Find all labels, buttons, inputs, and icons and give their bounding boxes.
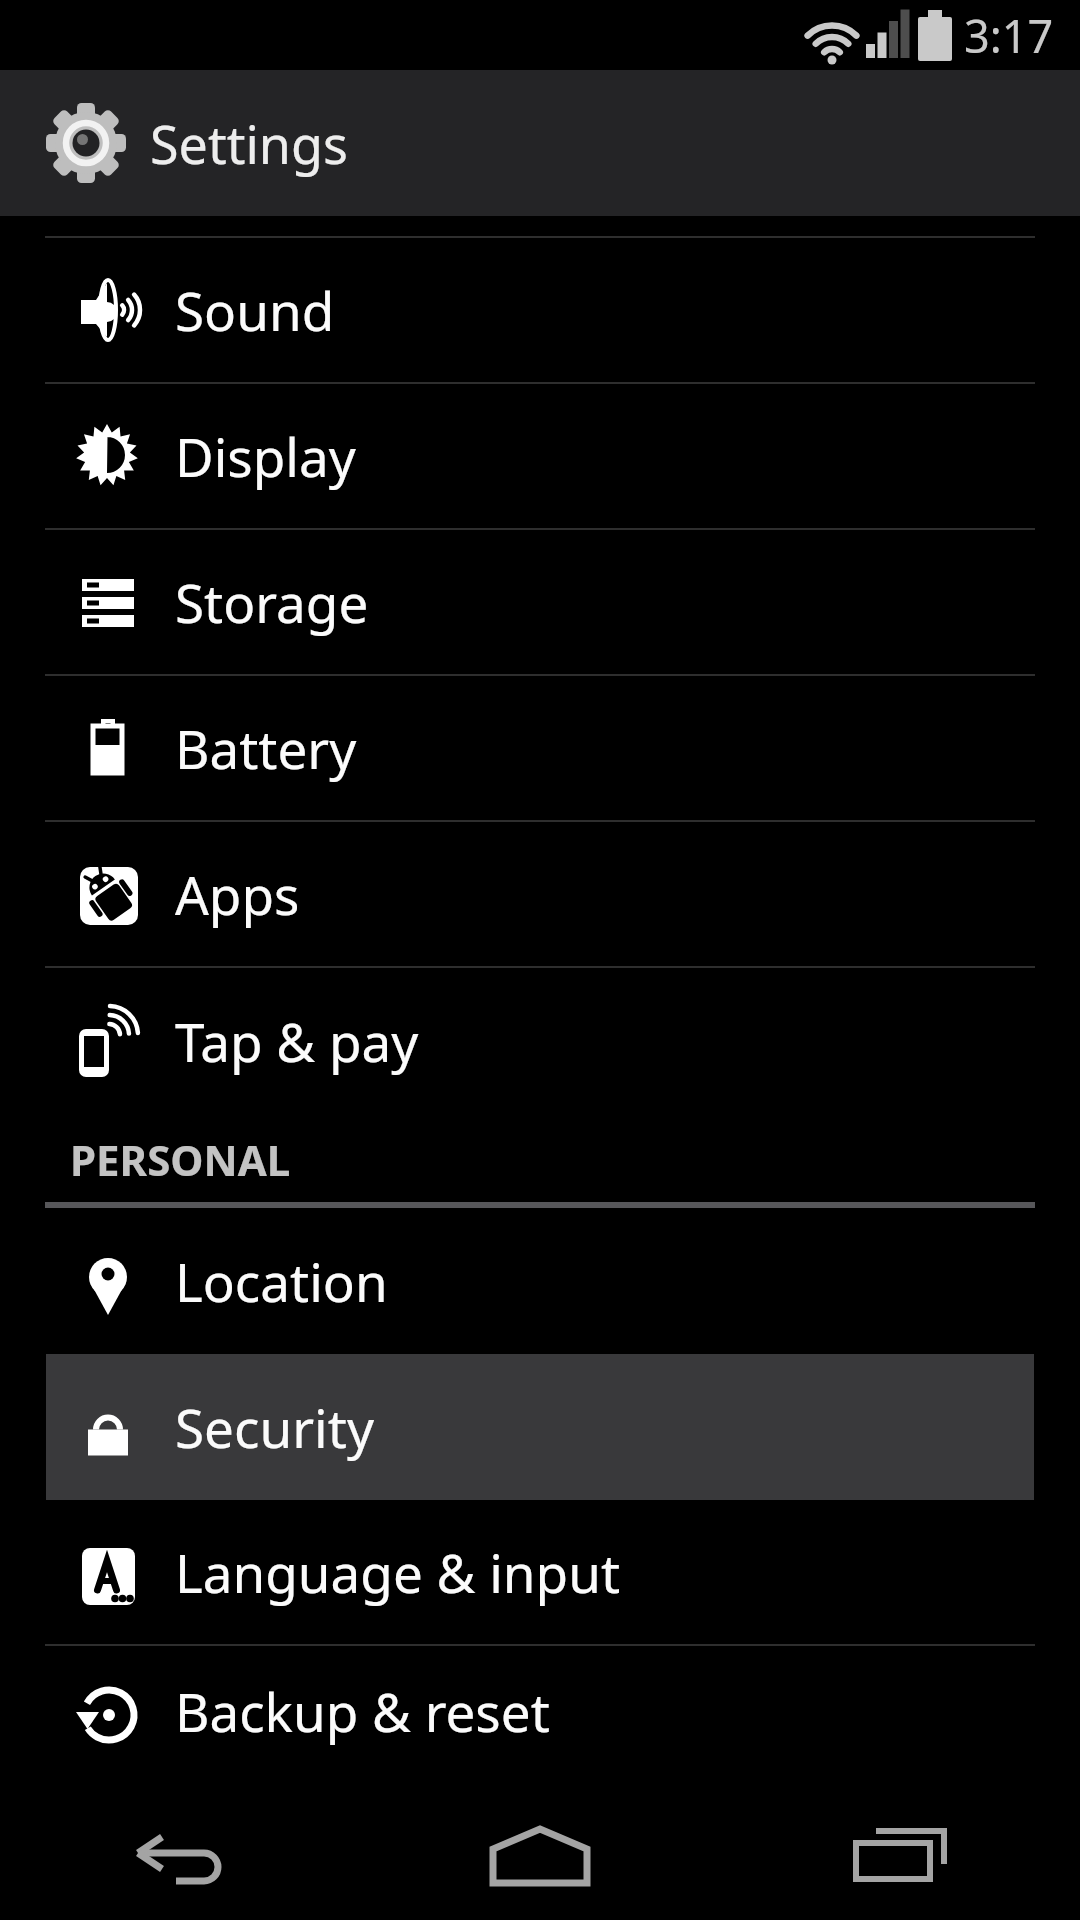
button[interactable]: Display xyxy=(0,384,1080,528)
button[interactable]: Apps xyxy=(0,822,1080,966)
staticText: Storage xyxy=(175,566,369,638)
button[interactable] xyxy=(720,1776,1080,1920)
button[interactable]: Backup & reset xyxy=(0,1646,1080,1776)
button[interactable]: Sound xyxy=(0,238,1080,382)
button[interactable]: Storage xyxy=(0,530,1080,674)
staticText: Tap & pay xyxy=(175,1005,419,1077)
staticText: Language & input xyxy=(175,1536,621,1608)
button[interactable]: Language & input xyxy=(0,1500,1080,1644)
staticText: Backup & reset xyxy=(175,1675,550,1747)
button[interactable] xyxy=(360,1776,720,1920)
staticText: Display xyxy=(175,420,356,492)
staticText: Apps xyxy=(175,858,300,930)
staticText: Settings xyxy=(150,108,348,179)
button[interactable]: Battery xyxy=(0,676,1080,820)
button[interactable] xyxy=(0,1776,360,1920)
staticText: Location xyxy=(175,1245,388,1317)
button[interactable]: Security xyxy=(0,1354,1080,1500)
button[interactable]: Settings xyxy=(0,70,1080,216)
staticText: Security xyxy=(175,1391,374,1463)
button[interactable]: Tap & pay xyxy=(0,968,1080,1114)
staticText: 3:17 xyxy=(964,5,1054,66)
button[interactable]: Location xyxy=(0,1208,1080,1354)
staticText: Sound xyxy=(175,274,335,346)
staticText: Battery xyxy=(175,712,357,784)
staticText: PERSONAL xyxy=(70,1131,291,1188)
